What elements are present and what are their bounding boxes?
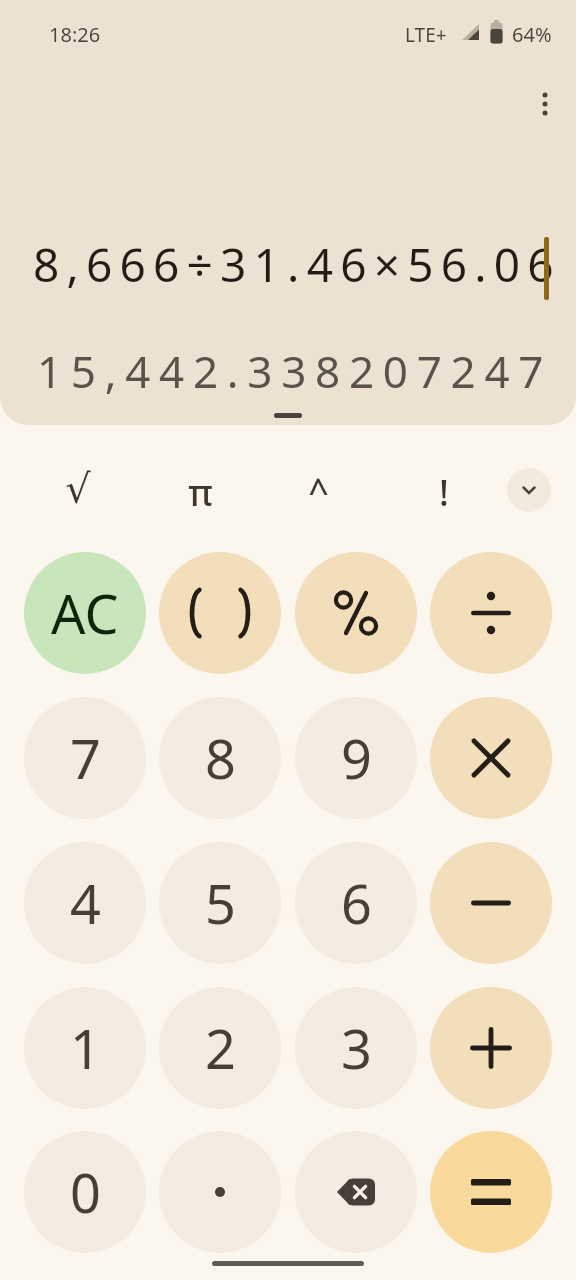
staticText: 4 xyxy=(70,866,101,940)
staticText: 1 xyxy=(70,1011,101,1085)
button[interactable]: 2 xyxy=(159,987,281,1109)
button[interactable] xyxy=(430,987,552,1109)
button[interactable]: AC xyxy=(24,552,146,674)
staticText: AC xyxy=(51,576,119,650)
staticText: 9 xyxy=(341,721,372,795)
button[interactable] xyxy=(507,468,551,512)
staticText: 8 xyxy=(205,721,236,795)
staticText: 5 xyxy=(205,866,236,940)
staticText: 6 xyxy=(341,866,372,940)
button[interactable] xyxy=(159,552,281,674)
button[interactable]: ^ xyxy=(296,467,340,511)
button[interactable]: 4 xyxy=(24,842,146,964)
staticText: ! xyxy=(439,468,449,512)
button[interactable]: 9 xyxy=(295,697,417,819)
staticText: 18:26 xyxy=(49,21,101,48)
button[interactable] xyxy=(430,1131,552,1253)
button[interactable]: 3 xyxy=(295,987,417,1109)
staticText: √ xyxy=(65,466,91,510)
button[interactable]: 8 xyxy=(159,697,281,819)
button[interactable] xyxy=(159,1131,281,1253)
button[interactable] xyxy=(527,86,563,122)
staticText: π xyxy=(188,468,213,512)
button[interactable] xyxy=(295,552,417,674)
staticText: ^ xyxy=(308,467,329,511)
staticText: 7 xyxy=(70,721,101,795)
staticText: 64% xyxy=(512,21,552,48)
button[interactable] xyxy=(295,1131,417,1253)
button[interactable]: π xyxy=(178,468,222,512)
staticText: 8,666÷31.46×56.06 xyxy=(33,233,561,296)
staticText: 3 xyxy=(341,1011,372,1085)
button[interactable]: ! xyxy=(422,468,466,512)
button[interactable]: 7 xyxy=(24,697,146,819)
button[interactable]: √ xyxy=(56,466,100,510)
button[interactable] xyxy=(430,842,552,964)
button[interactable]: 1 xyxy=(24,987,146,1109)
button[interactable]: 0 xyxy=(24,1131,146,1253)
staticText: 15,442.338207247 xyxy=(37,341,553,397)
button[interactable]: 6 xyxy=(295,842,417,964)
button[interactable] xyxy=(430,697,552,819)
staticText: 2 xyxy=(205,1011,236,1085)
button[interactable] xyxy=(430,552,552,674)
button[interactable]: 5 xyxy=(159,842,281,964)
staticText: LTE+ xyxy=(405,22,447,48)
staticText: 0 xyxy=(70,1155,101,1229)
